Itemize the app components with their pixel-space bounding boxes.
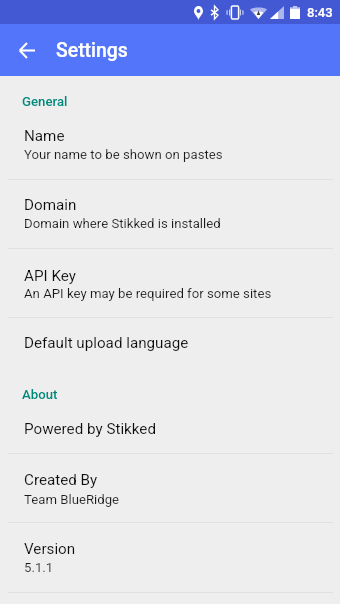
button[interactable]: Powered by Stikked	[0, 402, 340, 453]
staticText: Powered by Stikked	[24, 420, 156, 438]
staticText: Your name to be shown on pastes	[24, 147, 223, 162]
staticText: About	[22, 387, 58, 402]
staticText: Default upload language	[24, 334, 189, 352]
button[interactable]: Name	[0, 110, 340, 179]
button[interactable]: Created By	[0, 454, 340, 522]
button[interactable]: API Key	[0, 249, 340, 317]
staticText: Domain	[24, 196, 77, 214]
staticText: Team BlueRidge	[24, 492, 120, 507]
staticText: Name	[24, 127, 65, 145]
staticText: Settings	[56, 39, 128, 62]
button[interactable]: Domain	[0, 180, 340, 248]
staticText: Created By	[24, 471, 98, 489]
staticText: General	[22, 94, 68, 109]
staticText: API Key	[24, 267, 76, 285]
button[interactable]: Back	[5, 28, 49, 72]
staticText: 8:43	[307, 5, 333, 20]
staticText: An API key may be required for some site…	[24, 286, 272, 301]
staticText: Version	[24, 540, 76, 558]
button[interactable]: Default upload language	[0, 318, 340, 371]
staticText: 5.1.1	[24, 560, 54, 575]
staticText: Domain where Stikked is installed	[24, 216, 221, 231]
button[interactable]: Version	[0, 523, 340, 592]
